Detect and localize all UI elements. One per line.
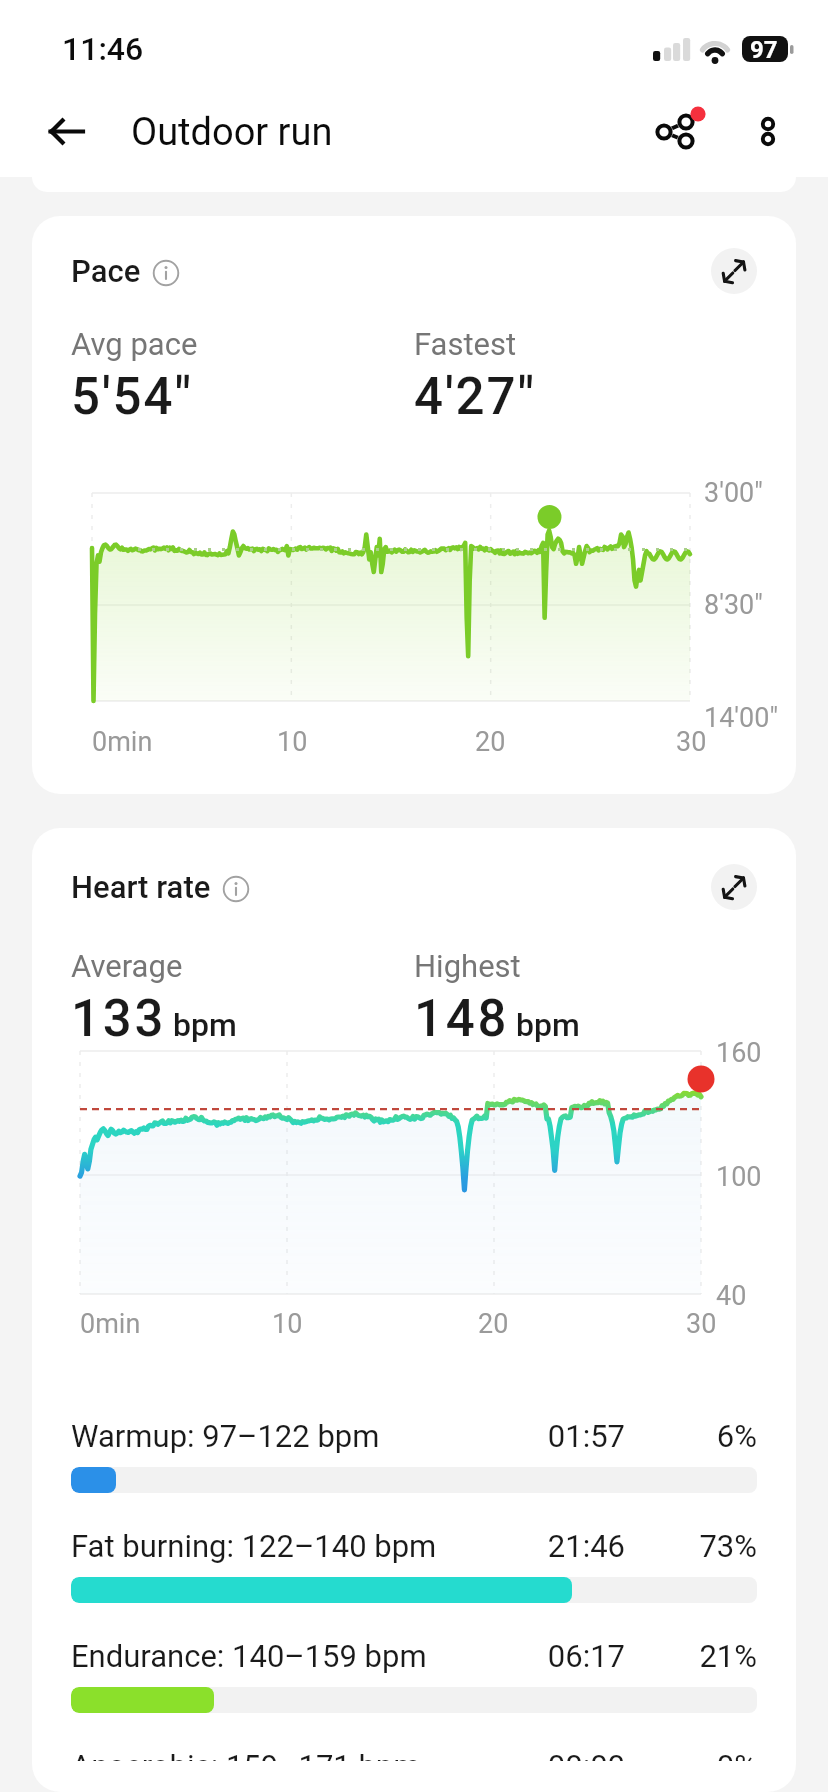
button[interactable]: Expand chart <box>711 864 757 910</box>
staticText: Fat burning: 122–140 bpm <box>71 1528 437 1564</box>
staticText: 30 <box>686 1308 717 1338</box>
staticText: 148 <box>414 989 510 1049</box>
staticText: 160 <box>716 1037 762 1069</box>
staticText: 4'27" <box>414 367 537 427</box>
staticText: bpm <box>173 1006 237 1044</box>
staticText: 21:46 <box>475 1528 625 1564</box>
staticText: 73% <box>653 1528 757 1564</box>
staticText: 10 <box>277 726 308 756</box>
staticText: Fastest <box>414 326 517 362</box>
staticText: Highest <box>414 948 521 984</box>
staticText: 8'30" <box>704 589 763 621</box>
button[interactable]: Fat burning: 122–140 bpm <box>71 1528 757 1603</box>
staticText: 06:17 <box>475 1638 625 1674</box>
staticText: 30 <box>676 726 707 756</box>
staticText: 01:57 <box>475 1418 625 1454</box>
staticText: Outdoor run <box>131 110 333 155</box>
button[interactable]: Expand chart <box>711 248 757 294</box>
staticText: 3'00" <box>704 477 763 509</box>
staticText: Anaerobic: 159–171 bpm <box>71 1748 421 1761</box>
staticText: bpm <box>516 1006 580 1044</box>
button[interactable]: More options <box>734 96 810 172</box>
staticText: 6% <box>653 1418 757 1454</box>
staticText: 0% <box>653 1748 757 1761</box>
staticText: Avg pace <box>71 326 198 362</box>
button[interactable]: Share <box>636 96 712 172</box>
staticText: 100 <box>716 1161 762 1193</box>
staticText: 20 <box>478 1308 509 1338</box>
staticText: 20 <box>475 726 506 756</box>
staticText: 40 <box>716 1280 747 1312</box>
staticText: 0min <box>92 726 153 756</box>
button[interactable]: Anaerobic: 159–171 bpm <box>71 1748 757 1761</box>
staticText: 11:46 <box>62 30 144 68</box>
staticText: 21% <box>653 1638 757 1674</box>
staticText: 133 <box>71 989 167 1049</box>
staticText: Heart rate <box>71 869 211 905</box>
button[interactable]: Endurance: 140–159 bpm <box>71 1638 757 1713</box>
button[interactable]: Warmup: 97–122 bpm <box>71 1418 757 1493</box>
staticText: Warmup: 97–122 bpm <box>71 1418 380 1454</box>
button[interactable]: Back <box>28 96 106 174</box>
staticText: Endurance: 140–159 bpm <box>71 1638 427 1674</box>
staticText: Average <box>71 948 183 984</box>
button[interactable]: Pace <box>71 253 179 289</box>
staticText: 0min <box>80 1308 141 1338</box>
button[interactable]: Heart rate <box>71 869 249 905</box>
staticText: 97 <box>750 36 778 64</box>
staticText: 5'54" <box>71 367 194 427</box>
staticText: 00:00 <box>475 1748 625 1761</box>
staticText: 10 <box>272 1308 303 1338</box>
staticText: Pace <box>71 253 141 289</box>
staticText: 14'00" <box>704 702 779 734</box>
